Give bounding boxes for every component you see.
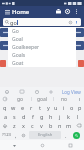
button[interactable]: j <box>55 112 64 121</box>
staticText: r <box>30 104 33 111</box>
button[interactable]: m <box>64 121 73 130</box>
staticText: Log View <box>62 89 81 95</box>
button[interactable]: Home <box>28 140 56 150</box>
button[interactable]: y <box>44 103 52 112</box>
button[interactable]: k <box>64 112 73 121</box>
button[interactable] <box>0 28 10 37</box>
staticText: . <box>65 132 67 139</box>
button[interactable]: Clear query <box>67 19 73 25</box>
button[interactable] <box>0 41 10 50</box>
button[interactable]: f <box>28 112 37 121</box>
staticText: Go <box>12 28 19 35</box>
staticText: o <box>70 104 74 111</box>
button[interactable]: w <box>9 103 18 112</box>
button[interactable]: Log View <box>62 88 81 95</box>
button[interactable]: Period <box>62 131 69 139</box>
staticText: i <box>63 104 65 111</box>
staticText: e <box>21 104 25 111</box>
button[interactable]: s <box>10 112 19 121</box>
button[interactable]: Goat <box>8 59 76 67</box>
button[interactable]: Goal <box>8 35 76 43</box>
staticText: c <box>31 122 34 129</box>
button[interactable]: o <box>68 103 76 112</box>
staticText: ?123 <box>2 132 12 138</box>
button[interactable]: Comma <box>13 131 19 139</box>
button[interactable]: h <box>46 112 55 121</box>
button[interactable]: u <box>52 103 60 112</box>
button[interactable]: Expand suggestions <box>75 95 84 103</box>
button[interactable]: Space <box>29 131 61 139</box>
staticText: Goalkeeper <box>12 44 40 51</box>
button[interactable]: q <box>0 103 9 112</box>
button[interactable] <box>72 41 84 50</box>
button[interactable]: x <box>19 121 28 130</box>
button[interactable] <box>0 60 6 67</box>
button[interactable]: v <box>37 121 46 130</box>
button[interactable]: e <box>18 103 27 112</box>
staticText: j <box>59 113 61 120</box>
button[interactable] <box>72 28 84 37</box>
staticText: , <box>15 132 17 139</box>
staticText: Goal <box>12 36 23 43</box>
staticText: no <box>61 96 68 103</box>
staticText: h <box>49 113 53 120</box>
staticText: go <box>10 19 17 26</box>
staticText: f <box>32 113 34 120</box>
button[interactable]: Sticker <box>3 88 10 95</box>
button[interactable]: p <box>76 103 84 112</box>
button[interactable]: b <box>46 121 55 130</box>
staticText: y <box>47 104 50 111</box>
staticText: z <box>13 122 16 129</box>
staticText: Goals <box>12 52 26 59</box>
button[interactable]: GIF <box>18 88 25 95</box>
button[interactable]: Go <box>8 27 76 35</box>
button[interactable]: t <box>36 103 44 112</box>
button[interactable]: Settings <box>63 7 72 16</box>
staticText: u <box>54 104 58 111</box>
button[interactable]: go <box>10 95 31 103</box>
staticText: v <box>40 122 43 129</box>
button[interactable]: Emoji <box>33 88 40 95</box>
button[interactable] <box>78 60 84 67</box>
staticText: t <box>39 104 41 111</box>
button[interactable]: no <box>54 95 75 103</box>
button[interactable]: goal <box>32 95 53 103</box>
button[interactable]: a <box>2 112 10 121</box>
button[interactable]: n <box>55 121 64 130</box>
button[interactable]: i <box>60 103 68 112</box>
staticText: n <box>58 122 62 129</box>
button[interactable]: Back <box>0 140 28 150</box>
button[interactable]: Shop <box>54 7 63 16</box>
button[interactable]: ?123 <box>1 131 13 139</box>
button[interactable]: r <box>27 103 36 112</box>
button[interactable]: Goals <box>8 51 76 59</box>
button[interactable]: Voice search <box>73 19 79 25</box>
staticText: English <box>38 132 53 138</box>
staticText: k <box>67 113 70 120</box>
button[interactable]: Shift <box>0 121 10 130</box>
button[interactable]: c <box>28 121 37 130</box>
staticText: b <box>49 122 53 129</box>
button[interactable]: Recent apps <box>56 140 84 150</box>
staticText: d <box>22 113 26 120</box>
button[interactable]: go <box>3 18 81 26</box>
staticText: s <box>13 113 16 120</box>
staticText: Goat <box>12 60 24 67</box>
staticText: Home <box>12 8 30 16</box>
staticText: a <box>4 113 8 120</box>
button[interactable]: Emoji keyboard <box>19 131 28 139</box>
staticText: w <box>11 104 16 111</box>
button[interactable]: d <box>19 112 28 121</box>
button[interactable]: Open navigation drawer <box>3 8 11 16</box>
button[interactable]: More options <box>72 7 81 16</box>
button[interactable]: Goalkeeper <box>8 43 76 51</box>
staticText: go <box>17 96 24 103</box>
staticText: p <box>78 104 82 111</box>
button[interactable]: l <box>73 112 82 121</box>
button[interactable]: Translate <box>47 88 54 95</box>
button[interactable]: Google <box>0 95 10 103</box>
button[interactable]: Search <box>73 132 80 139</box>
button[interactable]: z <box>10 121 19 130</box>
button[interactable]: g <box>37 112 46 121</box>
button[interactable]: Backspace <box>73 121 84 130</box>
